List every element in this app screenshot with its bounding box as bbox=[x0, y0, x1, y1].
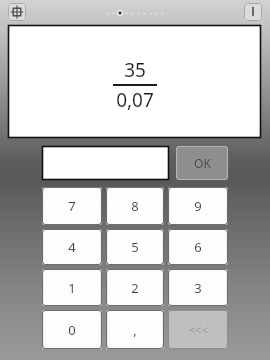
staticText: 3 bbox=[194, 279, 202, 297]
button[interactable]: 6 bbox=[168, 229, 228, 265]
staticText: 2 bbox=[131, 279, 139, 297]
button[interactable]: , bbox=[106, 310, 164, 349]
button[interactable]: OK bbox=[176, 146, 228, 180]
staticText: 6 bbox=[194, 238, 202, 256]
staticText: 7 bbox=[68, 197, 76, 215]
button[interactable]: 7 bbox=[42, 187, 102, 225]
button[interactable]: Answer input bbox=[42, 146, 169, 180]
button[interactable]: 4 bbox=[42, 229, 102, 265]
staticText: 8 bbox=[131, 197, 139, 215]
button[interactable]: 9 bbox=[168, 187, 228, 225]
staticText: 5 bbox=[131, 238, 139, 256]
button[interactable]: Settings bbox=[8, 3, 26, 21]
button[interactable]: Info bbox=[244, 3, 262, 21]
staticText: 0 bbox=[68, 321, 76, 339]
staticText: 0,07 bbox=[116, 87, 154, 113]
button[interactable]: 3 bbox=[168, 269, 228, 306]
button[interactable]: 1 bbox=[42, 269, 102, 306]
button[interactable]: 8 bbox=[106, 187, 164, 225]
staticText: 4 bbox=[68, 238, 76, 256]
button[interactable]: 0 bbox=[42, 310, 102, 349]
button[interactable]: <<< bbox=[168, 310, 228, 349]
button[interactable]: 2 bbox=[106, 269, 164, 306]
staticText: 1 bbox=[68, 279, 76, 297]
staticText: 35 bbox=[124, 57, 146, 83]
staticText: , bbox=[133, 321, 137, 339]
staticText: 9 bbox=[194, 197, 202, 215]
staticText: <<< bbox=[189, 322, 208, 337]
button[interactable]: 5 bbox=[106, 229, 164, 265]
staticText: OK bbox=[194, 155, 211, 171]
